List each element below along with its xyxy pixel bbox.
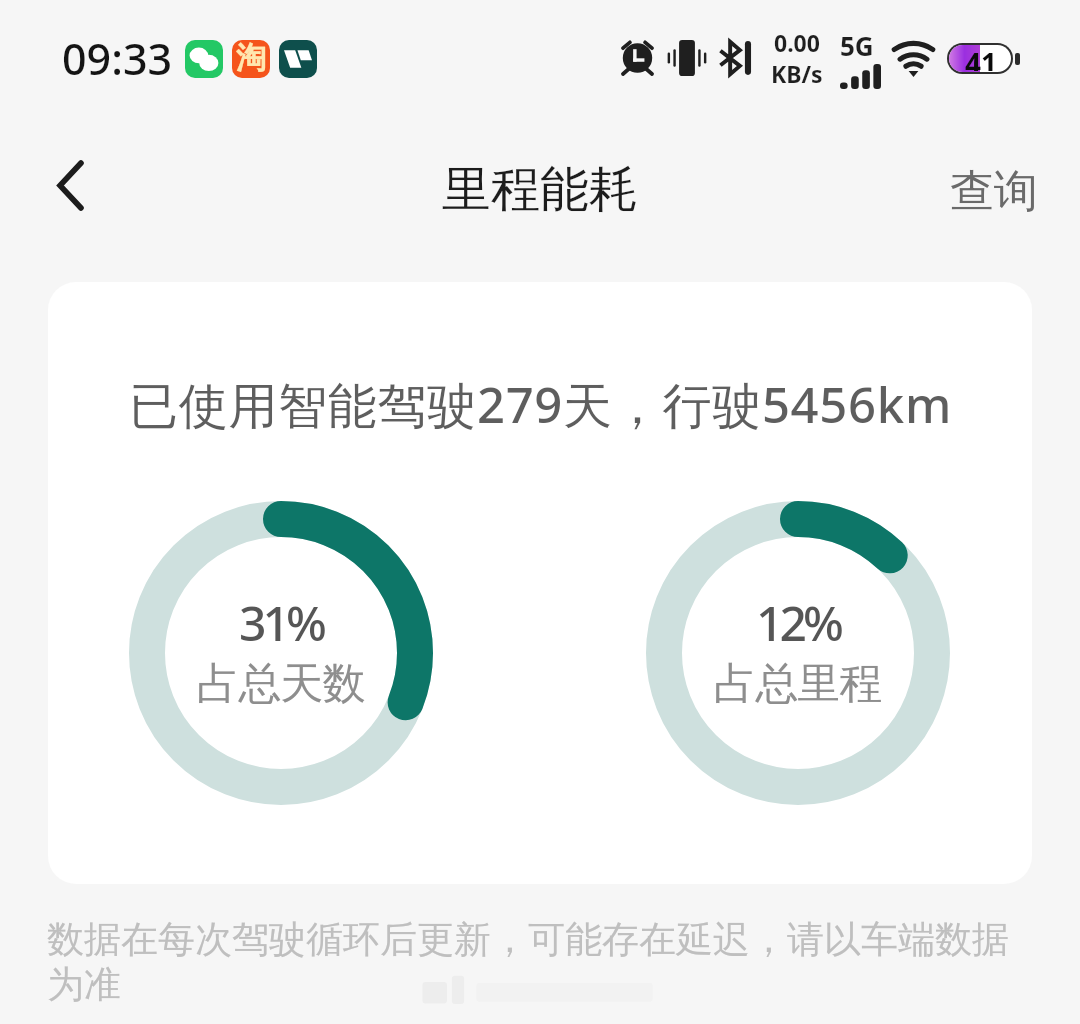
staticText: 占总天数 xyxy=(197,657,365,711)
staticText: 已使用智能驾驶279天，行驶5456km xyxy=(129,371,952,438)
staticText: 里程能耗 xyxy=(442,159,638,221)
button[interactable]: Back xyxy=(22,137,118,233)
staticText: 数据在每次驾驶循环后更新，可能存在延迟，请以车端数据为准 xyxy=(47,916,1033,1008)
staticText: 占总里程 xyxy=(714,657,882,711)
staticText: 查询 xyxy=(950,164,1038,219)
staticText: 0.00 xyxy=(774,27,820,58)
staticText: 41 xyxy=(965,45,998,71)
staticText: 12% xyxy=(756,590,840,655)
staticText: 31% xyxy=(239,590,323,655)
staticText: 淘 xyxy=(236,40,266,77)
staticText: KB/s xyxy=(771,58,823,89)
staticText: 5G xyxy=(840,28,874,63)
staticText: 09:33 xyxy=(62,29,173,88)
button[interactable]: 查询 xyxy=(920,150,1080,233)
